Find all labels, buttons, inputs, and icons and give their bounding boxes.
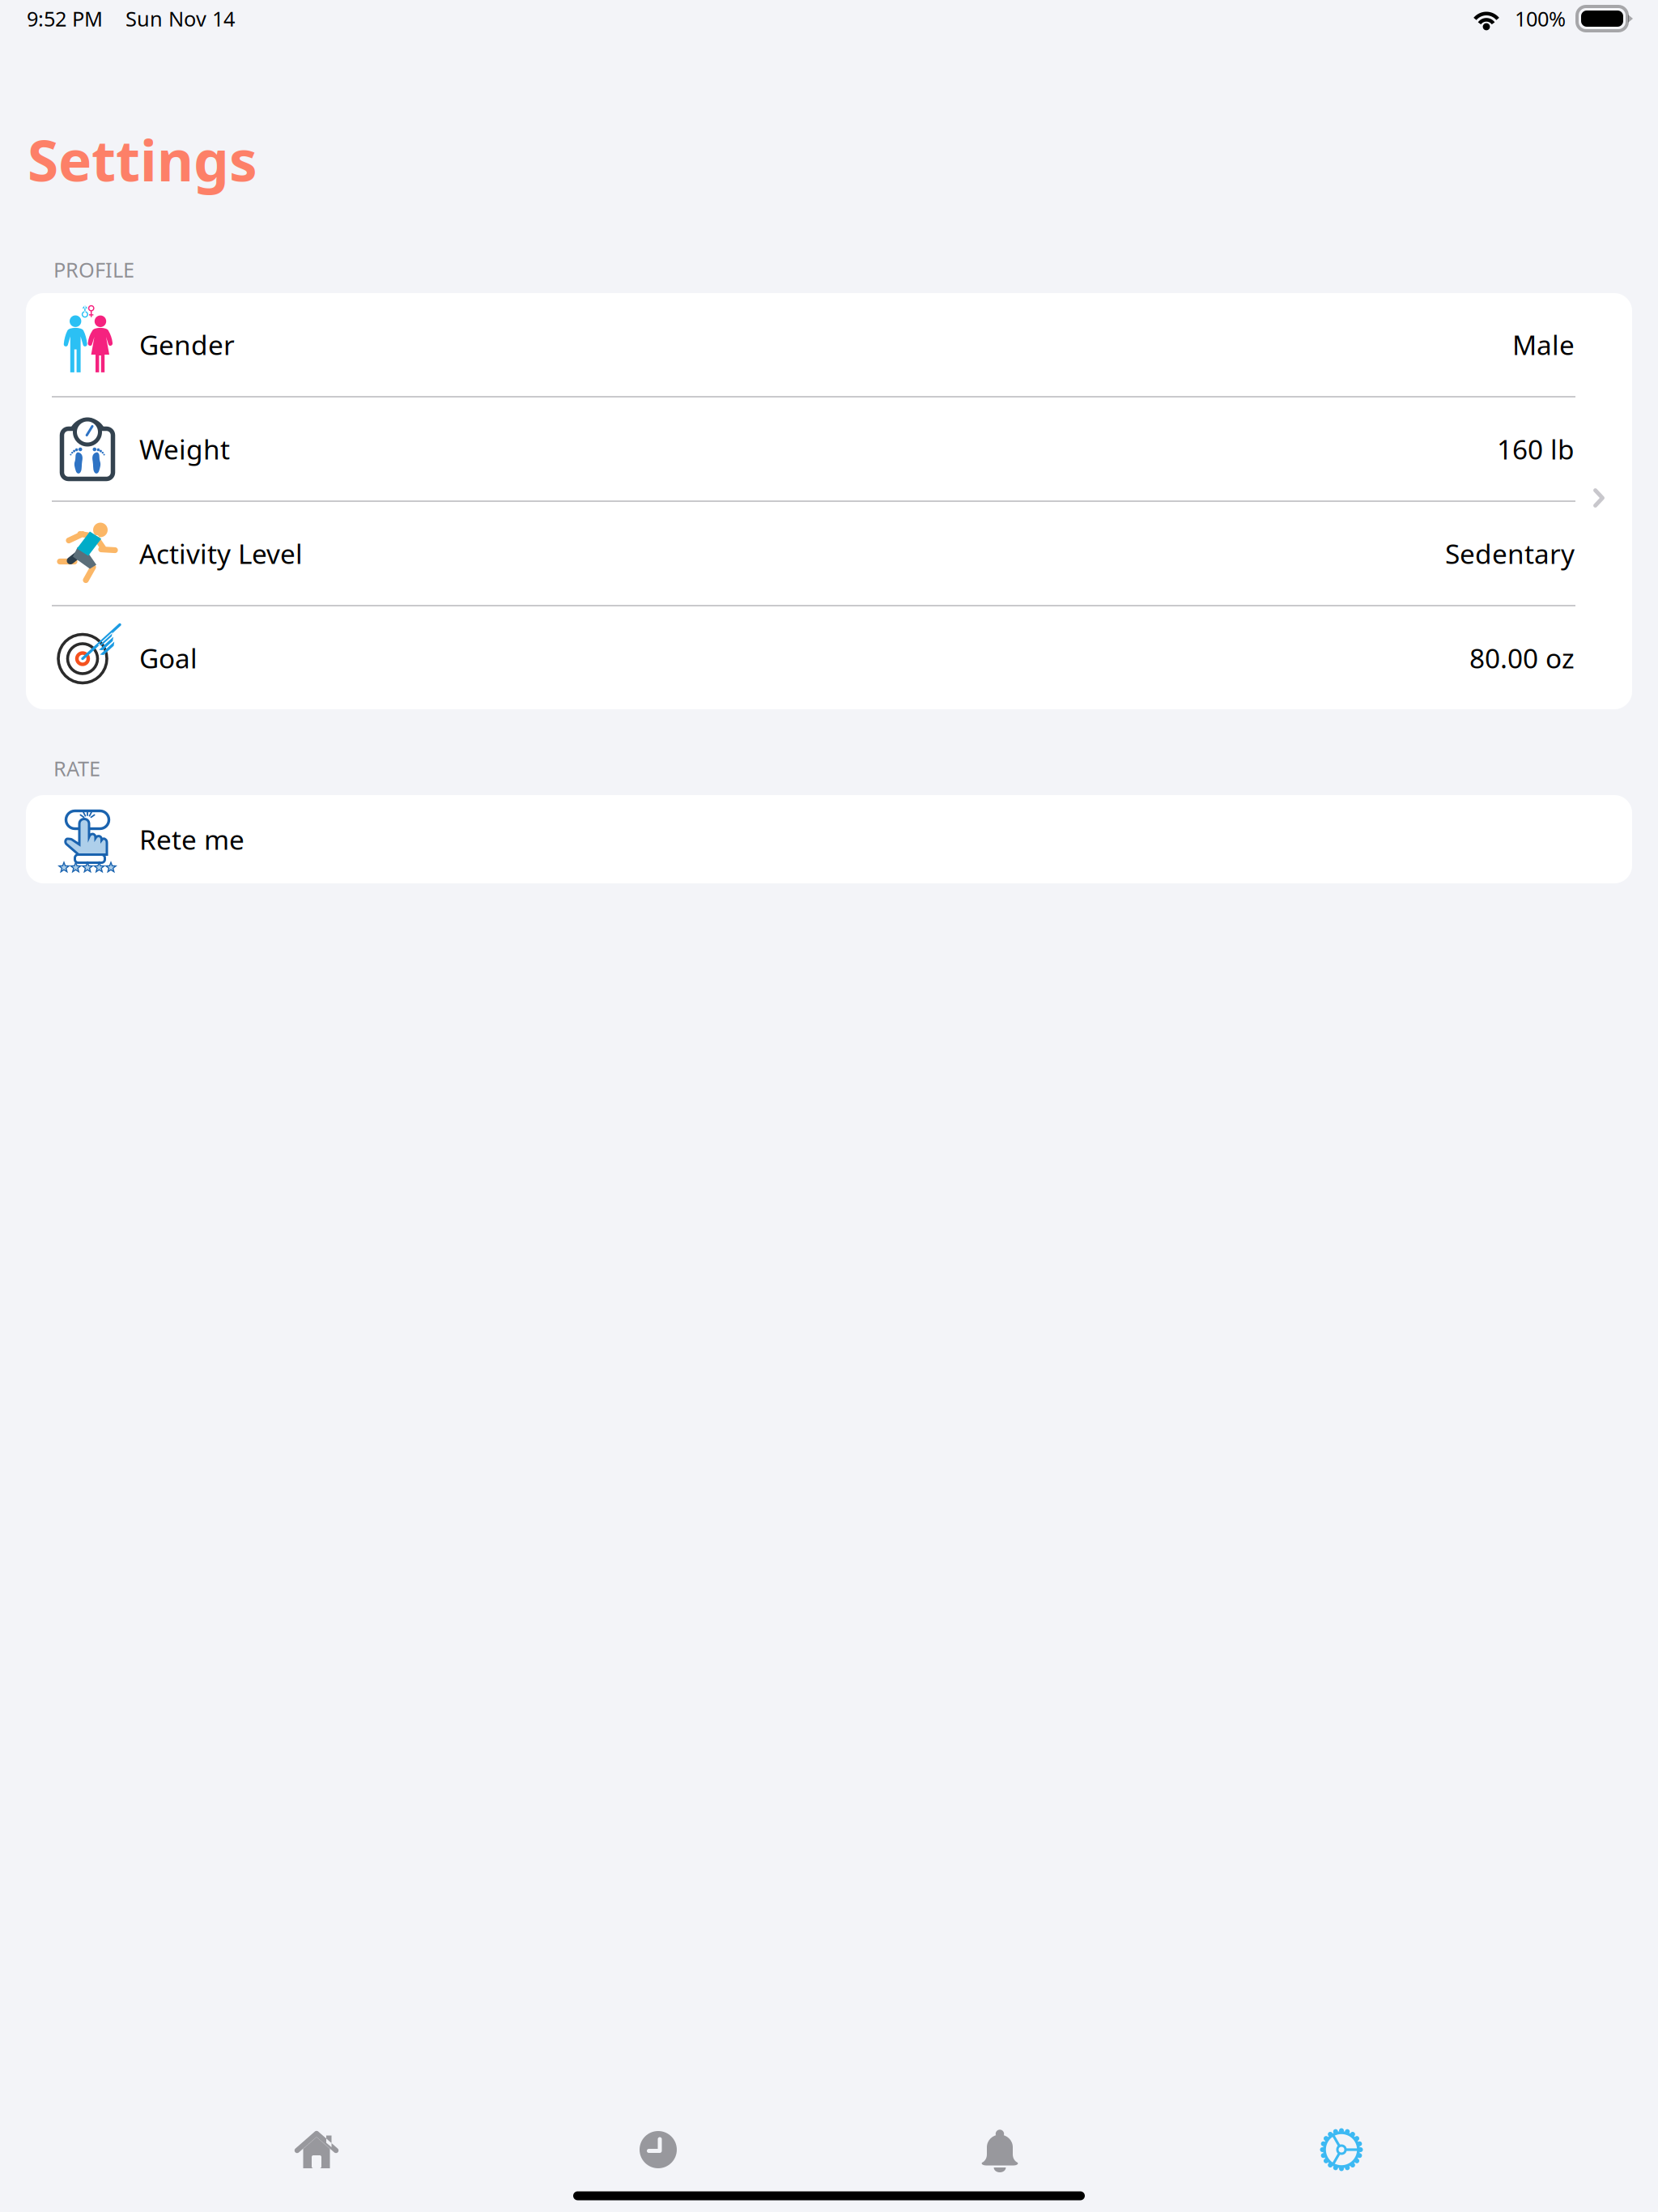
staticText: 160 lb <box>1497 431 1575 467</box>
button[interactable]: Weight <box>26 398 1632 500</box>
staticText: Sedentary <box>1445 536 1575 571</box>
staticText: Rete me <box>139 821 244 857</box>
staticText: Sun Nov 14 <box>125 5 235 32</box>
staticText: 80.00 oz <box>1469 640 1575 676</box>
staticText: PROFILE <box>53 256 134 283</box>
staticText: Weight <box>139 431 230 467</box>
button[interactable]: Goal <box>26 606 1632 709</box>
staticText: Activity Level <box>139 536 303 571</box>
staticText: Goal <box>139 640 198 676</box>
button[interactable]: Rete me <box>26 795 1632 883</box>
button[interactable]: Gender <box>26 293 1632 396</box>
button[interactable]: Notifications <box>829 2099 1171 2180</box>
button[interactable]: Settings <box>1171 2099 1512 2180</box>
staticText: Settings <box>28 122 257 197</box>
button[interactable]: Home <box>146 2099 487 2180</box>
button[interactable]: Activity Level <box>26 502 1632 605</box>
staticText: RATE <box>53 755 100 782</box>
staticText: Male <box>1512 327 1575 362</box>
staticText: 9:52 PM <box>27 5 103 32</box>
staticText: Gender <box>139 327 235 362</box>
staticText: 100% <box>1515 5 1566 32</box>
button[interactable]: History <box>487 2099 829 2180</box>
